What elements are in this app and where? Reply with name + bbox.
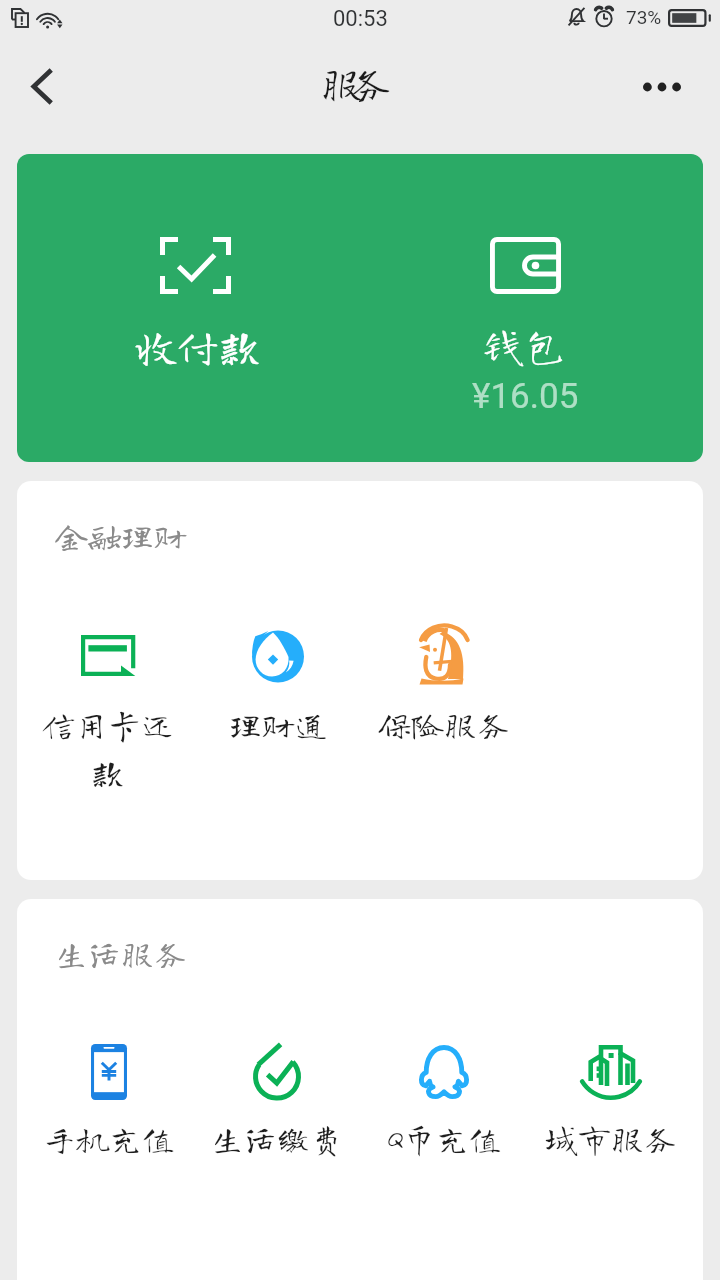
button[interactable]: 信用卡还款 <box>25 613 191 789</box>
staticText: 手机充值 <box>43 1122 175 1155</box>
staticText: 73% <box>626 6 662 28</box>
staticText: ¥16.05 <box>472 376 579 417</box>
button[interactable]: 手机充值 <box>26 1030 192 1155</box>
staticText: 00:53 <box>333 6 388 32</box>
staticText: 钱包 <box>483 324 568 366</box>
staticText: 生活服务 <box>55 937 187 970</box>
staticText: 信用卡还款 <box>27 708 189 789</box>
staticText: 金融理财 <box>55 519 187 552</box>
staticText: 保险服务 <box>378 708 510 741</box>
button[interactable]: 钱包 <box>360 154 703 462</box>
button[interactable]: Back <box>12 56 72 116</box>
button[interactable]: 城市服务 <box>528 1030 694 1155</box>
button[interactable]: 理财通 <box>195 614 361 741</box>
button[interactable]: Q币充值 <box>361 1030 527 1155</box>
button[interactable]: More options <box>630 57 694 117</box>
button[interactable]: 保险服务 <box>361 613 527 741</box>
staticText: 理财通 <box>229 708 328 741</box>
staticText: 生活缴费 <box>211 1122 343 1155</box>
button[interactable]: 生活缴费 <box>194 1030 360 1155</box>
button[interactable]: 收付款 <box>17 154 360 462</box>
staticText: 服务 <box>321 62 380 104</box>
staticText: 收付款 <box>135 325 262 367</box>
staticText: 城市服务 <box>545 1122 677 1155</box>
staticText: Q币充值 <box>386 1122 502 1155</box>
